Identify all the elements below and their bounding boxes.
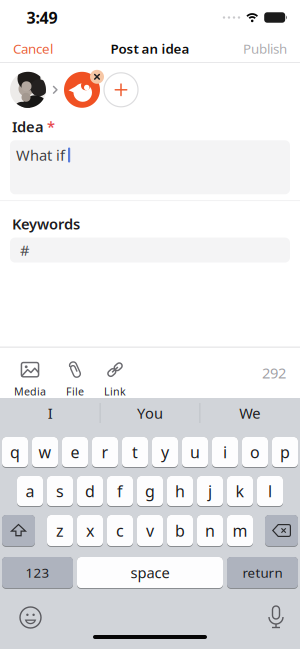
button[interactable]: Delete xyxy=(265,515,298,547)
button[interactable]: a xyxy=(17,476,43,507)
staticText: 123 xyxy=(25,564,49,581)
staticText: i xyxy=(223,441,227,463)
staticText: Keywords xyxy=(12,214,80,234)
staticText: c xyxy=(116,520,124,541)
button[interactable]: Publish xyxy=(243,40,300,57)
button[interactable]: c xyxy=(107,515,133,547)
staticText: m xyxy=(232,520,247,541)
staticText: l xyxy=(268,480,272,502)
button[interactable]: e xyxy=(62,437,88,468)
button[interactable]: Dictate xyxy=(267,606,285,628)
staticText: Cancel xyxy=(13,40,53,57)
button[interactable]: return xyxy=(227,557,298,589)
button[interactable]: File xyxy=(64,353,86,392)
button[interactable]: n xyxy=(197,515,223,547)
staticText: Publish xyxy=(243,40,287,57)
staticText: You xyxy=(137,403,163,423)
staticText: h xyxy=(175,480,185,502)
staticText: File xyxy=(66,384,84,398)
staticText: p xyxy=(280,441,290,463)
button[interactable]: y xyxy=(152,437,178,468)
button[interactable]: s xyxy=(47,476,73,507)
staticText: Idea xyxy=(12,117,44,136)
button[interactable]: q xyxy=(2,437,28,468)
button[interactable]: Cancel xyxy=(0,40,53,57)
staticText: k xyxy=(235,480,244,502)
button[interactable]: Idea text xyxy=(0,136,300,194)
button[interactable]: o xyxy=(242,437,268,468)
staticText: space xyxy=(130,563,169,582)
staticText: y xyxy=(161,441,169,463)
button[interactable]: i xyxy=(212,437,238,468)
staticText: s xyxy=(56,480,64,502)
staticText: x xyxy=(86,520,94,541)
staticText: I xyxy=(48,403,53,423)
button[interactable]: l xyxy=(257,476,283,507)
button[interactable]: u xyxy=(182,437,208,468)
button[interactable]: space xyxy=(77,557,223,589)
button[interactable]: Emoji xyxy=(20,607,41,628)
button[interactable]: g xyxy=(137,476,163,507)
staticText: w xyxy=(38,441,51,463)
button[interactable]: We xyxy=(200,403,299,423)
button[interactable]: v xyxy=(137,515,163,547)
staticText: f xyxy=(117,480,123,502)
staticText: r xyxy=(101,441,108,463)
staticText: g xyxy=(145,480,155,502)
button[interactable]: You xyxy=(100,403,199,423)
staticText: n xyxy=(205,520,215,541)
button[interactable]: z xyxy=(47,515,73,547)
staticText: t xyxy=(132,441,138,463)
staticText: 3:49 xyxy=(26,7,57,28)
staticText: u xyxy=(190,441,200,463)
staticText: Post an idea xyxy=(110,40,189,57)
button[interactable]: x xyxy=(77,515,103,547)
staticText: q xyxy=(10,441,20,463)
staticText: b xyxy=(175,520,185,541)
button[interactable]: w xyxy=(32,437,58,468)
staticText: d xyxy=(85,480,95,502)
staticText: return xyxy=(242,564,282,581)
button[interactable]: Media xyxy=(14,353,46,392)
button[interactable]: k xyxy=(227,476,253,507)
staticText: Media xyxy=(14,384,46,398)
staticText: z xyxy=(56,520,64,541)
button[interactable]: d xyxy=(77,476,103,507)
staticText: a xyxy=(25,480,34,502)
button[interactable]: h xyxy=(167,476,193,507)
button[interactable]: Keywords xyxy=(0,234,300,263)
staticText: Link xyxy=(104,384,126,398)
button[interactable]: m xyxy=(227,515,253,547)
staticText: We xyxy=(239,403,260,423)
button[interactable]: t xyxy=(122,437,148,468)
staticText: j xyxy=(208,480,212,502)
staticText: # xyxy=(20,240,29,260)
button[interactable]: I xyxy=(1,403,100,423)
button[interactable]: Profile xyxy=(10,72,46,108)
button[interactable]: 123 xyxy=(2,557,73,589)
staticText: v xyxy=(146,520,154,541)
button[interactable]: Add destination xyxy=(104,73,138,107)
button[interactable]: r xyxy=(92,437,118,468)
button[interactable]: Shift xyxy=(2,515,35,547)
button[interactable]: b xyxy=(167,515,193,547)
button[interactable]: j xyxy=(197,476,223,507)
button[interactable]: f xyxy=(107,476,133,507)
staticText: e xyxy=(70,441,79,463)
button[interactable]: Link xyxy=(104,353,126,392)
button[interactable]: Remove destination xyxy=(64,72,100,108)
button[interactable]: p xyxy=(272,437,298,468)
staticText: o xyxy=(250,441,260,463)
staticText: * xyxy=(47,117,55,136)
staticText: What if xyxy=(16,145,65,165)
staticText: 292 xyxy=(262,363,286,382)
